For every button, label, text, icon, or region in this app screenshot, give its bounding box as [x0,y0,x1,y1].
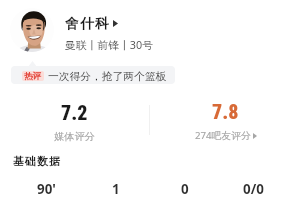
button[interactable]: 热评 [11,66,175,84]
staticText: 基础数据 [13,155,61,169]
staticText: 媒体评分 [54,130,95,143]
staticText: 舍什科 [65,15,110,32]
button[interactable]: 7.2 [20,101,129,143]
staticText: 7.2 [61,101,88,124]
staticText: 1 [112,180,120,198]
staticText: 热评 [24,71,42,81]
staticText: 0 [181,180,189,198]
button[interactable]: Player photo [10,8,54,52]
staticText: 90' [37,180,56,198]
staticText: 一次得分，抢了两个篮板 [48,70,167,84]
button[interactable]: 7.8 [170,100,281,142]
staticText: 274吧友评分 [195,129,251,142]
button[interactable]: 舍什科 [65,15,118,32]
staticText: 0/0 [243,180,264,198]
staticText: 曼联丨前锋丨30号 [65,37,153,52]
staticText: 7.8 [212,100,239,123]
